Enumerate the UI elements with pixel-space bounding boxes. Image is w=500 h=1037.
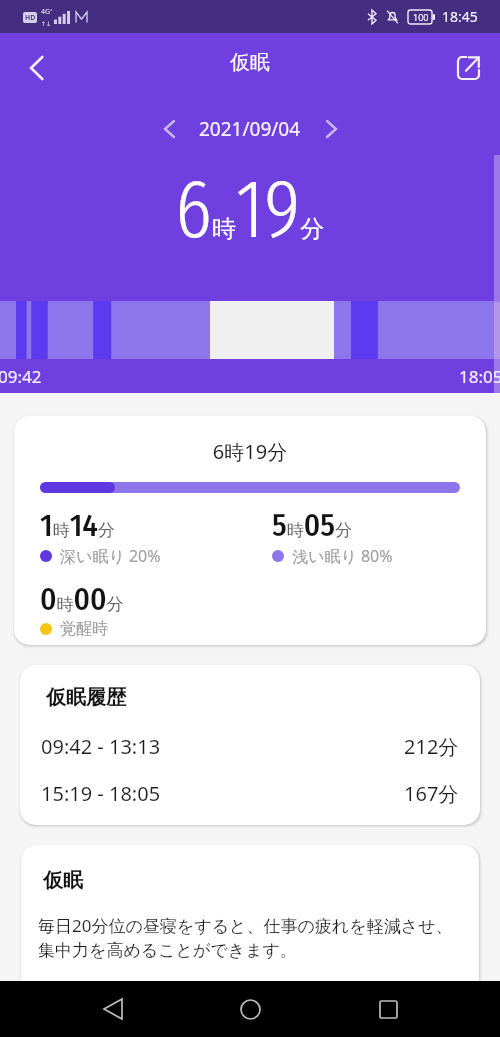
button[interactable]: Next day <box>314 112 348 146</box>
staticText: 18:45 <box>442 7 478 26</box>
button[interactable]: Home <box>225 984 275 1034</box>
button[interactable]: Back <box>18 50 54 86</box>
staticText: 212分 <box>404 733 459 760</box>
staticText: 仮眠 <box>0 50 500 75</box>
staticText: 仮眠履歴 <box>46 685 126 710</box>
staticText: 5時05分 <box>272 507 353 544</box>
staticText: 18:05 <box>459 365 500 388</box>
staticText: ↑↓ <box>41 20 52 27</box>
staticText: 6時19分 <box>175 159 325 259</box>
staticText: 09:42 - 13:13 <box>41 733 161 760</box>
staticText: 仮眠 <box>43 868 83 893</box>
button[interactable]: Back <box>88 984 138 1034</box>
staticText: 4G⁺ <box>41 7 53 17</box>
staticText: 毎日20分位の昼寝をすると、仕事の疲れを軽減させ、 集中力を高めることができます… <box>38 914 453 961</box>
button[interactable]: Previous day <box>152 112 186 146</box>
staticText: 浅い眠り 80% <box>292 545 393 567</box>
button[interactable]: 09:42 - 13:13 <box>41 733 459 763</box>
staticText: 100 <box>413 11 429 23</box>
staticText: 深い眠り 20% <box>60 545 161 567</box>
staticText: 167分 <box>404 780 459 807</box>
staticText: 2021/09/04 <box>199 116 301 142</box>
button[interactable]: 15:19 - 18:05 <box>41 780 459 810</box>
staticText: 6時19分 <box>14 438 486 465</box>
button[interactable]: Recent apps <box>363 984 413 1034</box>
staticText: 1時14分 <box>40 507 115 544</box>
staticText: 覚醒時 <box>60 619 108 639</box>
button[interactable]: Share <box>450 50 486 86</box>
staticText: 0時00分 <box>40 581 124 618</box>
staticText: HD <box>25 13 36 23</box>
staticText: 15:19 - 18:05 <box>41 780 161 807</box>
staticText: 09:42 <box>0 365 42 388</box>
